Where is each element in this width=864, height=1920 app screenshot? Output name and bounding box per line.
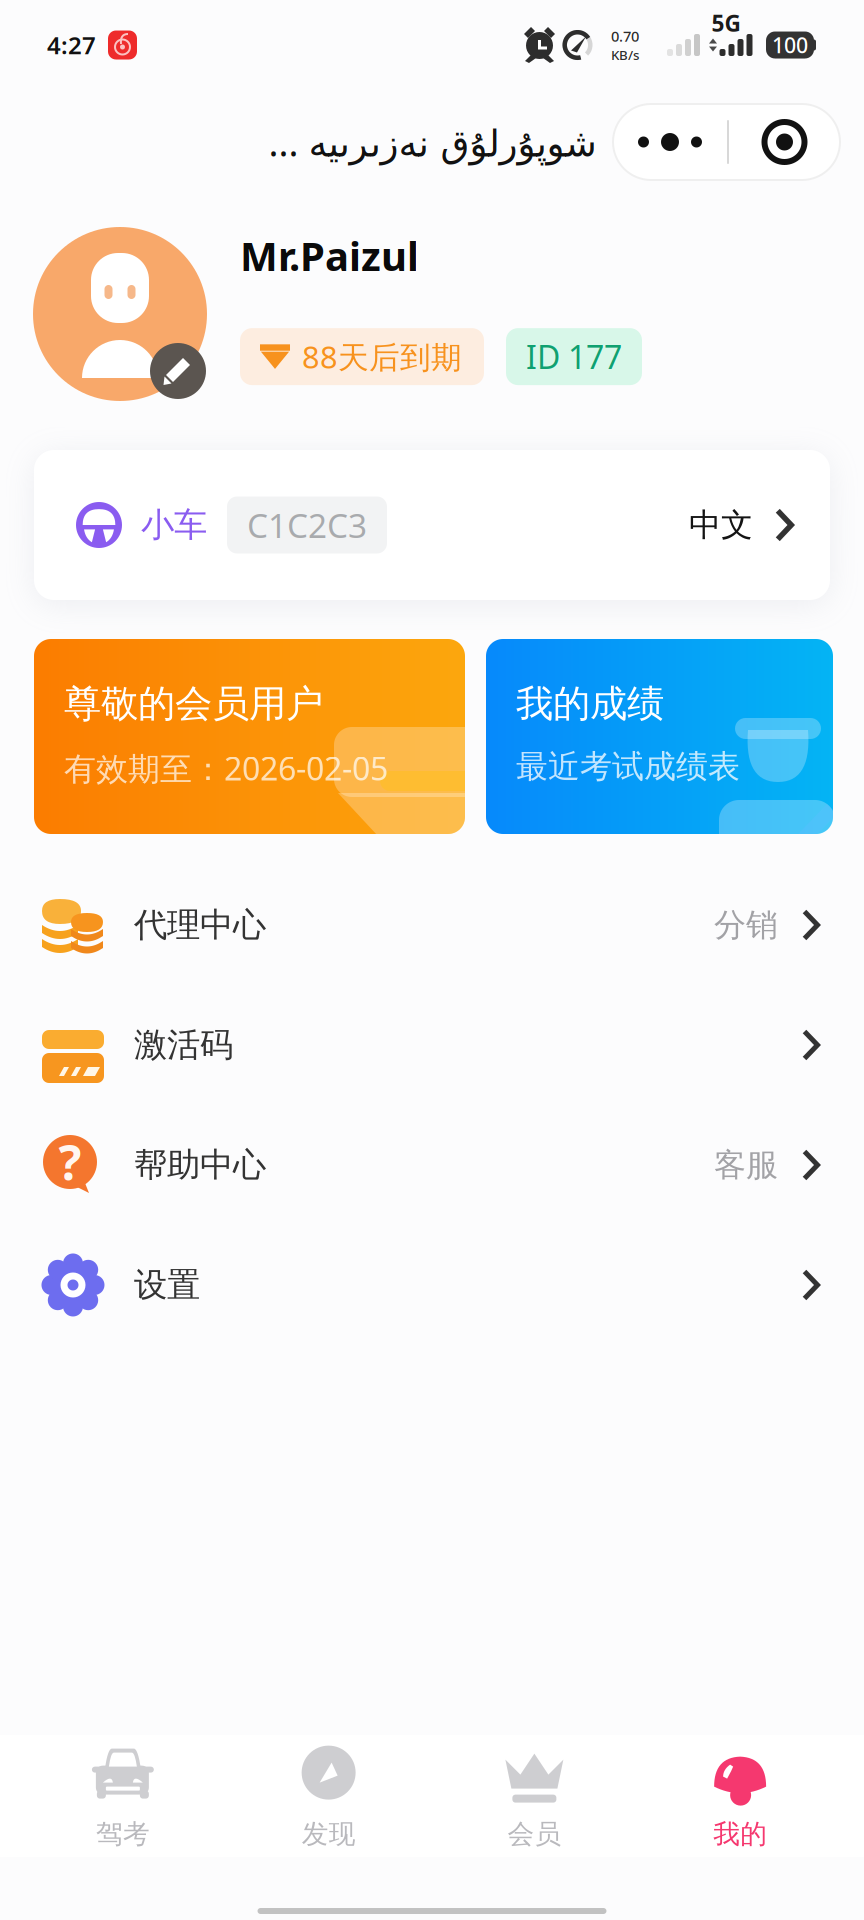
staticText: 代理中心: [134, 904, 266, 945]
button[interactable]: More options: [613, 104, 840, 180]
staticText: 激活码: [134, 1024, 233, 1065]
staticText: 客服: [714, 1145, 778, 1185]
staticText: 中文: [689, 505, 753, 545]
staticText: C1C2C3: [247, 503, 367, 547]
button[interactable]: 会员: [431, 1735, 637, 1857]
staticText: Mr.Paizul: [240, 229, 419, 282]
staticText: 最近考试成绩表: [516, 747, 740, 786]
staticText: ?: [58, 1130, 81, 1194]
staticText: 驾考: [96, 1818, 150, 1850]
staticText: 发现: [302, 1818, 356, 1850]
button[interactable]: 代理中心: [0, 865, 864, 985]
staticText: 我的: [713, 1818, 767, 1850]
button[interactable]: 我的成绩: [486, 639, 833, 834]
staticText: 分销: [714, 905, 778, 945]
button[interactable]: 设置: [0, 1225, 864, 1345]
button[interactable]: ?: [0, 1105, 864, 1225]
button[interactable]: 我的: [637, 1735, 843, 1857]
button[interactable]: 发现: [226, 1735, 432, 1857]
button[interactable]: 尊敬的会员用户: [34, 639, 465, 834]
staticText: 有效期至：2026-02-05: [64, 747, 388, 789]
staticText: 会员: [507, 1818, 561, 1850]
staticText: 帮助中心: [134, 1144, 266, 1185]
button[interactable]: 激活码: [0, 985, 864, 1105]
staticText: 设置: [134, 1264, 200, 1305]
staticText: 0.70: [611, 26, 639, 46]
button[interactable]: 小车: [34, 450, 830, 600]
button[interactable]: 驾考: [20, 1735, 226, 1857]
staticText: 100: [772, 31, 808, 59]
staticText: 88天后到期: [302, 336, 462, 377]
button[interactable]: Edit avatar: [33, 227, 207, 401]
staticText: KB/s: [611, 46, 639, 64]
staticText: 我的成绩: [516, 681, 664, 727]
staticText: ID 177: [526, 335, 622, 378]
staticText: 小车: [141, 504, 207, 545]
staticText: 4:27: [47, 29, 96, 61]
staticText: 5G: [711, 8, 740, 38]
staticText: شوپۇرلۇق نەزىرىيە ...: [268, 117, 596, 167]
staticText: 尊敬的会员用户: [64, 681, 323, 727]
